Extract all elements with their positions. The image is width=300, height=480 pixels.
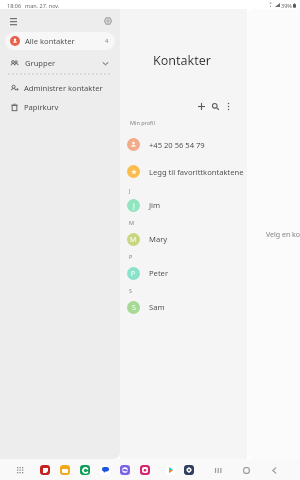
staticText: man. 27. nov. — [25, 2, 60, 9]
button[interactable]: P — [120, 263, 247, 283]
button[interactable]: Instagram — [138, 463, 152, 477]
staticText: S — [132, 303, 136, 313]
staticText: J — [129, 187, 131, 194]
staticText: 39% — [281, 2, 292, 9]
staticText: M — [129, 219, 134, 226]
button[interactable]: Administrer kontakter — [5, 79, 115, 97]
button[interactable]: Files — [58, 463, 72, 477]
button[interactable]: Settings — [182, 463, 196, 477]
staticText: Mary — [149, 234, 168, 244]
staticText: Alle kontakter — [25, 36, 75, 46]
button[interactable]: Alle kontakter — [5, 32, 115, 50]
staticText: Min profil — [130, 119, 247, 126]
staticText: Peter — [149, 268, 169, 278]
button[interactable]: Papirkurv — [5, 98, 115, 116]
staticText: J — [133, 201, 135, 211]
staticText: Kontakter — [153, 52, 211, 69]
staticText: M — [130, 235, 137, 245]
button[interactable]: Menu — [6, 14, 20, 28]
button[interactable]: Recents — [211, 463, 225, 477]
button[interactable]: Search — [208, 99, 222, 113]
staticText: P — [131, 269, 136, 279]
staticText: Sam — [149, 302, 165, 312]
staticText: S — [129, 287, 133, 294]
staticText: Velg en kontakt — [266, 230, 300, 240]
button[interactable]: Home — [239, 463, 253, 477]
button[interactable]: Back — [267, 463, 281, 477]
button[interactable]: Messages — [98, 463, 112, 477]
staticText: Administrer kontakter — [24, 83, 103, 93]
staticText: Jim — [149, 200, 161, 210]
staticText: Grupper — [25, 58, 56, 68]
button[interactable]: Settings — [101, 14, 115, 28]
staticText: 4 — [105, 37, 109, 45]
button[interactable]: S — [120, 297, 247, 317]
button[interactable]: More options — [221, 99, 235, 113]
staticText: +45 20 56 54 79 — [149, 140, 205, 150]
button[interactable]: Legg til favorittkontaktene — [120, 158, 247, 185]
button[interactable]: Phone — [78, 463, 92, 477]
button[interactable]: Play Store — [164, 463, 178, 477]
button[interactable]: Samsung Internet — [118, 463, 132, 477]
button[interactable]: Apps — [13, 463, 27, 477]
button[interactable]: Journal — [38, 463, 52, 477]
staticText: P — [129, 253, 133, 260]
staticText: Papirkurv — [24, 102, 59, 112]
button[interactable]: M — [120, 229, 247, 249]
button[interactable]: +45 20 56 54 79 — [120, 131, 247, 158]
button[interactable]: Add contact — [194, 99, 208, 113]
staticText: Legg til favorittkontaktene — [149, 167, 244, 177]
button[interactable]: J — [120, 195, 247, 215]
staticText: 18:06 — [7, 2, 22, 9]
button[interactable]: Grupper — [5, 54, 115, 72]
